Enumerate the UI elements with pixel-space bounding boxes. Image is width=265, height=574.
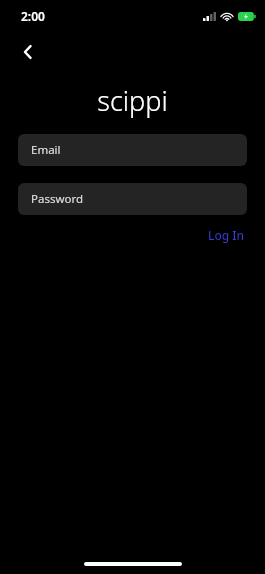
staticText: scippi [0,82,265,119]
button[interactable]: Password [18,183,247,215]
button[interactable]: Log In [206,224,247,246]
staticText: Log In [208,227,245,243]
staticText: Email [31,142,61,158]
staticText: Password [31,191,84,207]
button[interactable]: Back [12,36,44,68]
button[interactable]: Email [18,134,247,166]
staticText: 2:00 [21,8,45,24]
